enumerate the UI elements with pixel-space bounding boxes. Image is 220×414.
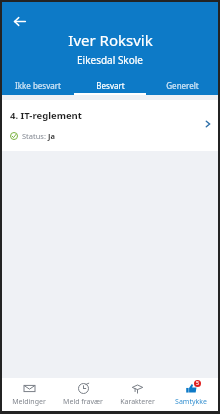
staticText: Besvart xyxy=(96,80,125,91)
staticText: Eikesdal Skole xyxy=(77,53,143,67)
button[interactable]: Generelt xyxy=(146,75,218,95)
staticText: Generelt xyxy=(166,80,199,91)
staticText: Iver Roksvik xyxy=(68,30,153,50)
staticText: Ja xyxy=(48,131,55,141)
staticText: Meldinger xyxy=(12,397,46,407)
staticText: Ikke besvart xyxy=(15,80,61,91)
staticText: Samtykke xyxy=(175,397,207,407)
staticText: Meld fravær xyxy=(63,397,103,407)
staticText: 5 xyxy=(196,380,199,387)
staticText: Karakterer xyxy=(120,397,155,407)
button[interactable]: Back xyxy=(8,10,30,32)
button[interactable]: 4. IT-reglement xyxy=(2,100,218,151)
staticText: Status: xyxy=(22,131,48,141)
button[interactable]: Meldinger xyxy=(2,378,56,411)
button[interactable]: 5 xyxy=(164,378,218,411)
button[interactable]: Karakterer xyxy=(110,378,164,411)
staticText: 4. IT-reglement xyxy=(10,109,210,122)
button[interactable]: Ikke besvart xyxy=(2,75,74,95)
button[interactable]: Besvart xyxy=(74,75,146,95)
button[interactable]: Meld fravær xyxy=(56,378,110,411)
